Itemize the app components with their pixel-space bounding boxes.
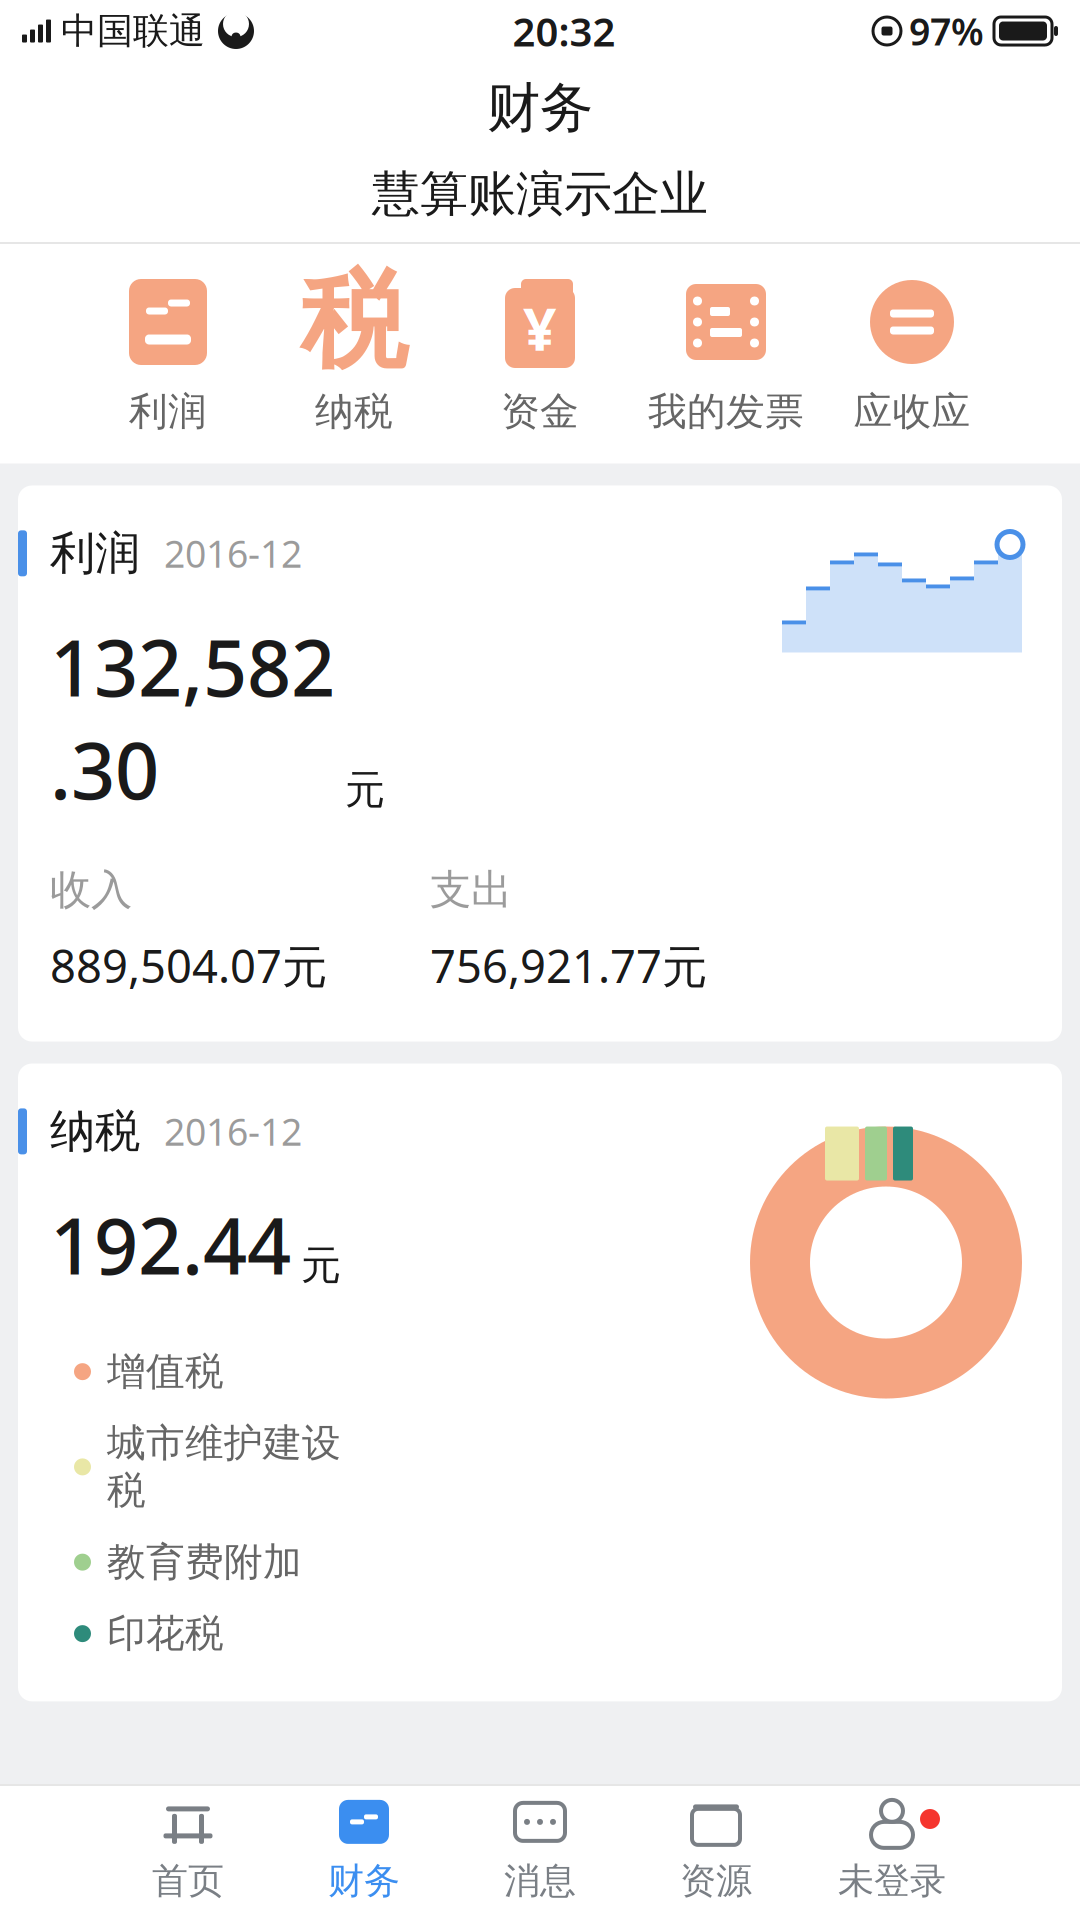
button[interactable]: 资源 (628, 1796, 804, 1904)
staticText: 元 (345, 765, 385, 814)
button[interactable]: 利润 (75, 270, 261, 441)
staticText: 财务 (328, 1859, 400, 1903)
staticText: 首页 (152, 1859, 224, 1903)
staticText: 慧算账演示企业 (372, 164, 708, 223)
staticText: 889,504.07元 (50, 935, 327, 995)
staticText: 城市维护建设税 (107, 1419, 341, 1514)
staticText: 收入 (50, 865, 132, 915)
button[interactable]: 财务 (276, 1796, 452, 1904)
staticText: 利润 (129, 388, 207, 435)
staticText: 财务 (487, 75, 593, 141)
staticText: 增值税 (107, 1348, 224, 1395)
staticText: 2016-12 (164, 528, 302, 578)
staticText: 纳税 (315, 388, 393, 435)
button[interactable]: 税 (261, 270, 447, 441)
staticText: 应收应 (853, 388, 970, 435)
staticText: 192.44 (50, 1193, 291, 1296)
button[interactable]: 首页 (100, 1796, 276, 1904)
button[interactable]: ¥ (447, 270, 633, 441)
staticText: 132,582.30 (50, 615, 335, 821)
staticText: 97% (909, 6, 984, 56)
staticText: 印花税 (107, 1610, 224, 1657)
button[interactable]: 消息 (452, 1796, 628, 1904)
staticText: 利润 (50, 525, 140, 581)
staticText: 元 (301, 1241, 341, 1290)
staticText: 中国联通 (61, 9, 205, 53)
staticText: 20:32 (512, 4, 615, 57)
staticText: 教育费附加 (107, 1538, 302, 1586)
staticText: 我的发票 (648, 388, 804, 435)
staticText: 税 (300, 256, 407, 387)
staticText: 资源 (680, 1859, 752, 1903)
button[interactable]: 未登录 (804, 1796, 980, 1904)
button[interactable]: 我的发票 (633, 270, 819, 441)
staticText: ¥ (523, 289, 557, 367)
staticText: 纳税 (50, 1103, 140, 1159)
staticText: 2016-12 (164, 1107, 302, 1156)
staticText: 756,921.77元 (430, 935, 707, 995)
button[interactable]: 应收应 (819, 270, 1005, 441)
staticText: 支出 (430, 865, 512, 915)
staticText: 消息 (504, 1859, 576, 1903)
staticText: 资金 (501, 388, 579, 435)
staticText: 未登录 (838, 1859, 946, 1903)
